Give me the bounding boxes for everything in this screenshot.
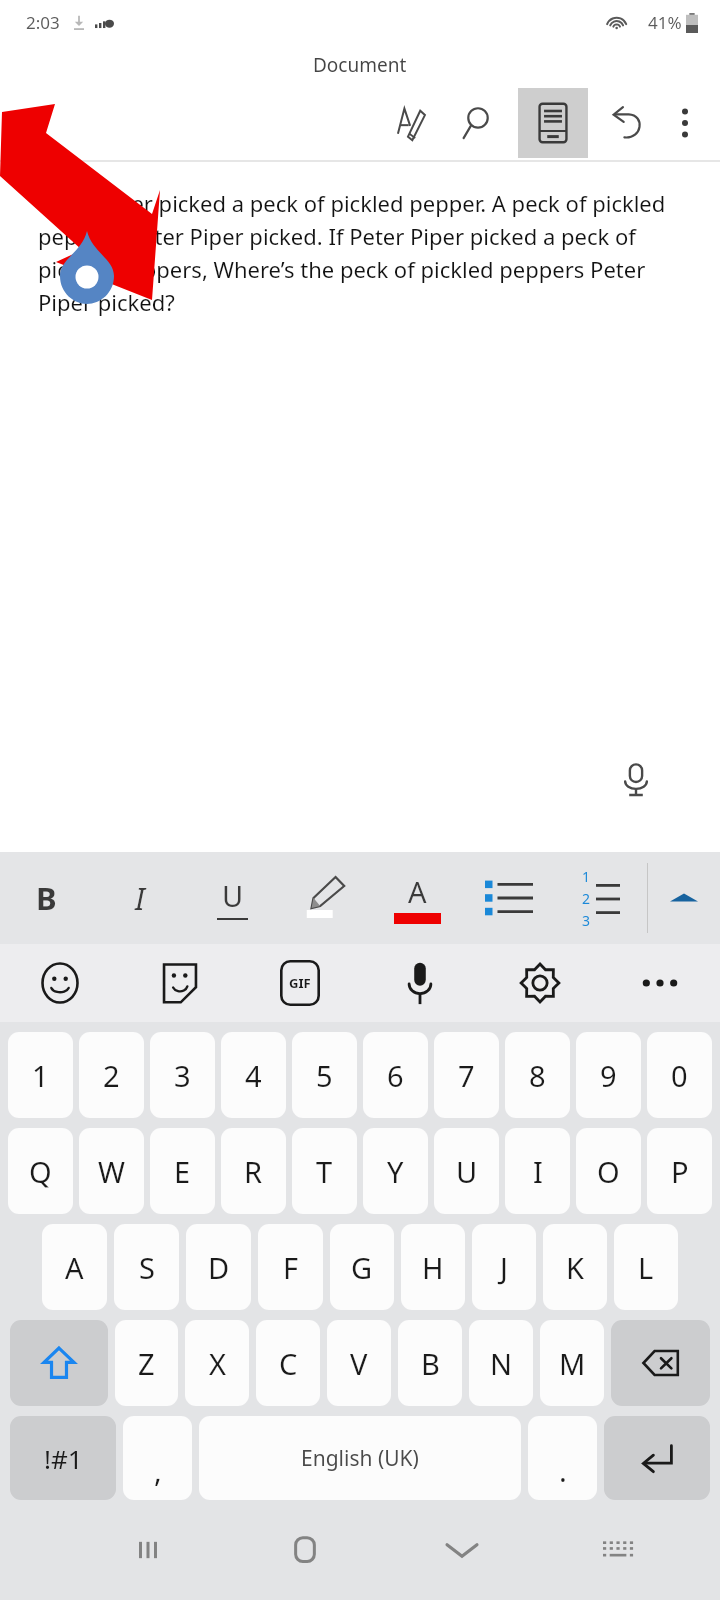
button[interactable]: ,	[123, 1416, 192, 1500]
button[interactable]: Recent apps	[69, 1500, 226, 1600]
button[interactable]: X	[185, 1320, 249, 1406]
staticText: U	[456, 1152, 478, 1191]
button[interactable]: Mobile view	[518, 88, 588, 158]
staticText: 1	[582, 867, 591, 886]
button[interactable]: F	[258, 1224, 323, 1310]
staticText: O	[597, 1152, 620, 1191]
button[interactable]: Text highlight colour	[279, 852, 371, 944]
button[interactable]: N	[469, 1320, 533, 1406]
staticText: 41%	[648, 11, 682, 34]
button[interactable]: A	[42, 1224, 107, 1310]
button[interactable]: Expand toolbar	[648, 852, 720, 944]
staticText: Peter Piper picked a peck of pickled pep…	[38, 188, 686, 317]
button[interactable]: Italic	[93, 852, 186, 944]
button[interactable]: 2	[79, 1032, 144, 1118]
staticText: A	[408, 872, 427, 911]
button[interactable]: U	[434, 1128, 499, 1214]
button[interactable]: Emoji	[0, 944, 120, 1022]
button[interactable]: S	[114, 1224, 179, 1310]
button[interactable]: GIF	[240, 944, 360, 1022]
button[interactable]: Font colour	[371, 852, 463, 944]
staticText: U	[222, 876, 244, 915]
button[interactable]: 4	[221, 1032, 286, 1118]
staticText: 6	[387, 1056, 404, 1095]
button[interactable]: Home	[226, 1500, 383, 1600]
button[interactable]: Symbols	[10, 1416, 116, 1500]
button[interactable]: L	[614, 1224, 678, 1310]
button[interactable]: English (UK)	[199, 1416, 521, 1500]
button[interactable]: W	[79, 1128, 144, 1214]
staticText: P	[671, 1152, 689, 1191]
button[interactable]: Enter	[604, 1416, 710, 1500]
button[interactable]: Y	[363, 1128, 428, 1214]
staticText: 5	[316, 1056, 333, 1095]
button[interactable]: Numbered list	[555, 852, 647, 944]
button[interactable]: Shift	[10, 1320, 108, 1406]
staticText: GIF	[289, 974, 311, 992]
button[interactable]: P	[647, 1128, 712, 1214]
button[interactable]: Bold	[0, 852, 93, 944]
staticText: Y	[387, 1152, 404, 1191]
staticText: 1	[32, 1056, 49, 1095]
button[interactable]: H	[401, 1224, 465, 1310]
button[interactable]: .	[528, 1416, 597, 1500]
staticText: R	[244, 1152, 263, 1191]
button[interactable]: Collapse ribbon	[8, 94, 66, 152]
staticText: V	[350, 1344, 368, 1383]
button[interactable]: T	[292, 1128, 357, 1214]
button[interactable]: Dictate	[594, 738, 678, 822]
button[interactable]: 9	[576, 1032, 641, 1118]
button[interactable]: Voice input	[360, 944, 480, 1022]
button[interactable]: B	[398, 1320, 462, 1406]
button[interactable]: G	[330, 1224, 394, 1310]
button[interactable]: Stickers	[120, 944, 240, 1022]
staticText: B	[36, 877, 57, 919]
button[interactable]: More keyboard options	[600, 944, 720, 1022]
staticText: Document	[313, 52, 407, 78]
staticText: H	[422, 1248, 444, 1287]
button[interactable]: M	[540, 1320, 604, 1406]
button[interactable]: Z	[115, 1320, 178, 1406]
button[interactable]: K	[543, 1224, 607, 1310]
staticText: D	[208, 1248, 230, 1287]
staticText: T	[316, 1152, 333, 1191]
button[interactable]: Switch keyboard	[540, 1500, 697, 1600]
staticText: 0	[671, 1056, 688, 1095]
button[interactable]: Undo	[600, 95, 656, 151]
staticText: 2:03	[26, 11, 60, 34]
button[interactable]: Underline	[186, 852, 279, 944]
button[interactable]: 7	[434, 1032, 499, 1118]
button[interactable]: E	[150, 1128, 215, 1214]
button[interactable]: I	[505, 1128, 570, 1214]
button[interactable]: 0	[647, 1032, 712, 1118]
staticText: 8	[529, 1056, 546, 1095]
staticText: M	[559, 1344, 586, 1383]
button[interactable]: 3	[150, 1032, 215, 1118]
button[interactable]: More options	[658, 96, 712, 150]
button[interactable]: R	[221, 1128, 286, 1214]
staticText: I	[533, 1152, 543, 1191]
button[interactable]: Ink and draw	[380, 95, 436, 151]
staticText: .	[559, 1451, 567, 1490]
button[interactable]: 6	[363, 1032, 428, 1118]
button[interactable]: Bulleted list	[463, 852, 555, 944]
staticText: L	[638, 1248, 654, 1287]
button[interactable]: Search	[450, 95, 506, 151]
button[interactable]: C	[256, 1320, 320, 1406]
button[interactable]: Q	[8, 1128, 73, 1214]
staticText: B	[421, 1344, 440, 1383]
staticText: Z	[138, 1344, 155, 1383]
button[interactable]: Backspace	[611, 1320, 710, 1406]
button[interactable]: V	[327, 1320, 391, 1406]
button[interactable]: J	[472, 1224, 536, 1310]
staticText: 7	[458, 1056, 475, 1095]
button[interactable]: 1	[8, 1032, 73, 1118]
staticText: 2	[582, 889, 591, 908]
button[interactable]: 8	[505, 1032, 570, 1118]
button[interactable]: Hide keyboard	[383, 1500, 540, 1600]
button[interactable]: D	[186, 1224, 251, 1310]
staticText: E	[174, 1152, 191, 1191]
button[interactable]: 5	[292, 1032, 357, 1118]
button[interactable]: Keyboard settings	[480, 944, 600, 1022]
button[interactable]: O	[576, 1128, 641, 1214]
